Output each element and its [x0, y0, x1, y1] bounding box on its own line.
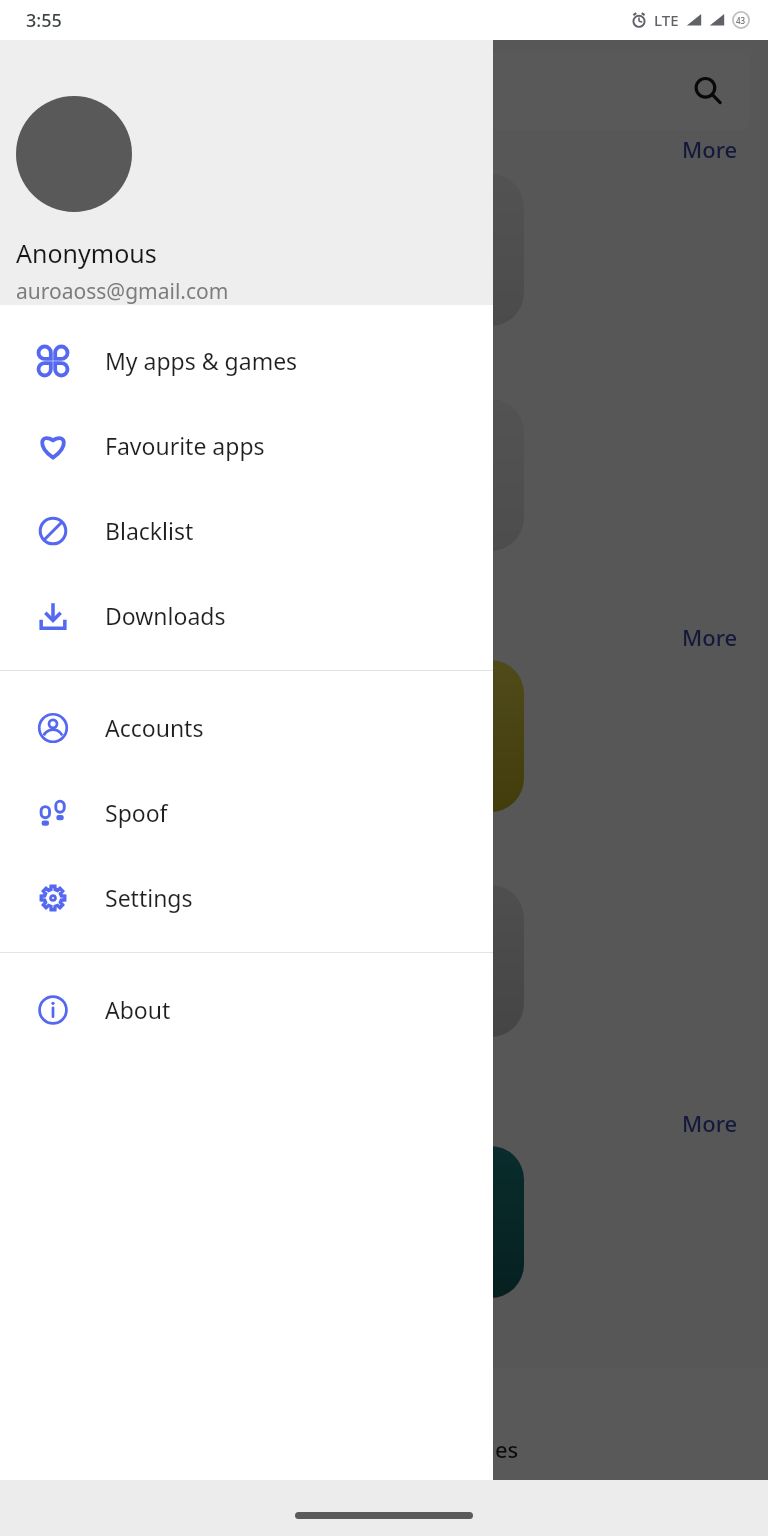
staticText: LTE [654, 10, 679, 30]
staticText: Favourite apps [105, 430, 265, 461]
staticText: N [63, 190, 137, 310]
button[interactable]: Blacklist [0, 488, 493, 573]
staticText: Spoof [105, 797, 168, 828]
button[interactable]: Apps & Games [18, 52, 750, 130]
button[interactable]: Settings [0, 855, 493, 940]
staticText: 3:55 [26, 8, 62, 33]
button[interactable]: About [0, 967, 493, 1052]
button[interactable]: Accounts [0, 685, 493, 770]
button[interactable]: Downloads [0, 573, 493, 658]
staticText: Apps & Games [96, 76, 248, 106]
staticText: 43 [736, 15, 746, 26]
staticText: Facebook Lite [198, 336, 327, 363]
staticText: Settings [105, 882, 193, 913]
staticText: More [682, 134, 738, 164]
button[interactable]: Close navigation drawer [0, 40, 768, 1480]
staticText: Categories [405, 1434, 519, 1464]
staticText: auroaoss@gmail.com [16, 277, 229, 305]
staticText: f [250, 174, 298, 326]
staticText: My apps & games [105, 345, 298, 376]
staticText: Blacklist [105, 515, 194, 546]
button[interactable]: My apps & games [0, 318, 493, 403]
staticText: Downloads [105, 600, 226, 631]
button[interactable]: Favourite apps [0, 403, 493, 488]
button[interactable]: Categories [405, 1385, 519, 1464]
staticText: More [682, 1108, 738, 1138]
staticText: Video Edit… [24, 336, 134, 363]
staticText: 1.5 MB [198, 368, 257, 393]
staticText: 73.1 MB [198, 593, 267, 618]
staticText: Anonymous [16, 236, 157, 270]
staticText: About [105, 994, 171, 1025]
staticText: Accounts [105, 712, 204, 743]
staticText: More [682, 622, 738, 652]
staticText: …ree … [24, 822, 92, 849]
button[interactable]: Spoof [0, 770, 493, 855]
